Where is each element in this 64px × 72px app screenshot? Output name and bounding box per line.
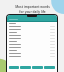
button[interactable]: Action <box>32 66 43 69</box>
button[interactable] <box>9 34 55 37</box>
button[interactable] <box>9 37 55 40</box>
button[interactable] <box>9 43 55 46</box>
button[interactable] <box>9 40 55 43</box>
button[interactable] <box>9 31 55 34</box>
button[interactable]: Action <box>9 66 19 69</box>
button[interactable] <box>9 28 55 31</box>
staticText: Most important words <box>15 5 50 9</box>
staticText: for your daily life <box>19 10 46 14</box>
button[interactable]: Action <box>44 66 55 69</box>
button[interactable]: Action <box>20 66 31 69</box>
button[interactable] <box>9 52 55 55</box>
button[interactable] <box>9 49 55 52</box>
button[interactable] <box>9 25 55 28</box>
button[interactable] <box>9 46 55 49</box>
button[interactable] <box>9 55 55 58</box>
button[interactable]: Action <box>7 15 57 72</box>
